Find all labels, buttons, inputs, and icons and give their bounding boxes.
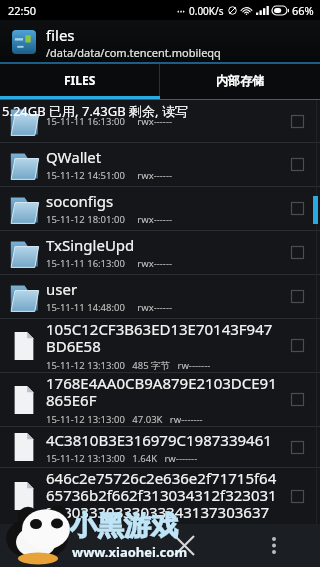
staticText: user [46,279,78,299]
staticText: 15-11-12 14:51:00 rwx------ [46,169,173,182]
staticText: TxSingleUpd [46,235,135,255]
staticText: 105C12CF3B63ED13E70143F947BD6E58 [46,319,280,357]
staticText: /data/data/com.tencent.mobileqq [46,45,221,60]
staticText: 15-11-12 13:13:00 47.03K rw------- [46,413,203,426]
button[interactable]: TxSingleUpd [0,231,320,274]
button[interactable]: user [0,275,320,318]
staticText: FILES [64,72,96,88]
staticText: 15-11-11 16:13:00 rwx------ [46,257,173,270]
staticText: QWallet [46,147,102,167]
staticText: soconfigs [46,191,114,211]
staticText: 15-11-12 13:13:00 485 字节 rw------- [46,359,211,372]
staticText: www.xiaohei.com [72,543,188,561]
button[interactable]: Close [134,524,234,567]
button[interactable]: 646c2e75726c2e636e2f71715f6465736b2f662f… [0,468,320,524]
button[interactable]: QWallet [0,143,320,186]
staticText: 内部存储 [216,73,264,88]
staticText: 66% [292,3,314,18]
button[interactable]: 15-11-11 16:13:00 rwx------ [0,100,320,142]
staticText: 4C3810B3E316979C19873394610720FF [46,430,280,450]
staticText: 646c2e75726c2e636e2f71715f6465736b2f662f… [46,468,280,523]
button[interactable]: 内部存储 [160,64,320,96]
staticText: files [46,25,75,45]
staticText: 1768E4AA0CB9A879E2103DCE91865E6F [46,373,280,411]
staticText: 22:50 [8,3,37,18]
button[interactable]: 4C3810B3E316979C19873394610720FF [0,427,320,467]
staticText: 5.24GB 已用, 7.43GB 剩余, 读写 [2,102,188,120]
staticText: 15-11-12 13:13:00 1.64K rw------- [46,452,198,465]
staticText: 小黑游戏 [70,509,178,543]
staticText: 15-11-12 18:01:00 rwx------ [46,213,173,226]
staticText: ··· [177,4,186,18]
button[interactable]: 105C12CF3B63ED13E70143F947BD6E58 [0,319,320,372]
button[interactable]: More options [234,524,314,567]
button[interactable]: 1768E4AA0CB9A879E2103DCE91865E6F [0,373,320,426]
staticText: 15-11-11 14:48:00 rwx------ [46,301,173,314]
button[interactable]: soconfigs [0,187,320,230]
button[interactable]: FILES [0,64,159,96]
staticText: 15-11-11 16:13:00 rwx------ [46,115,173,128]
staticText: 0.00K/s [189,4,224,18]
